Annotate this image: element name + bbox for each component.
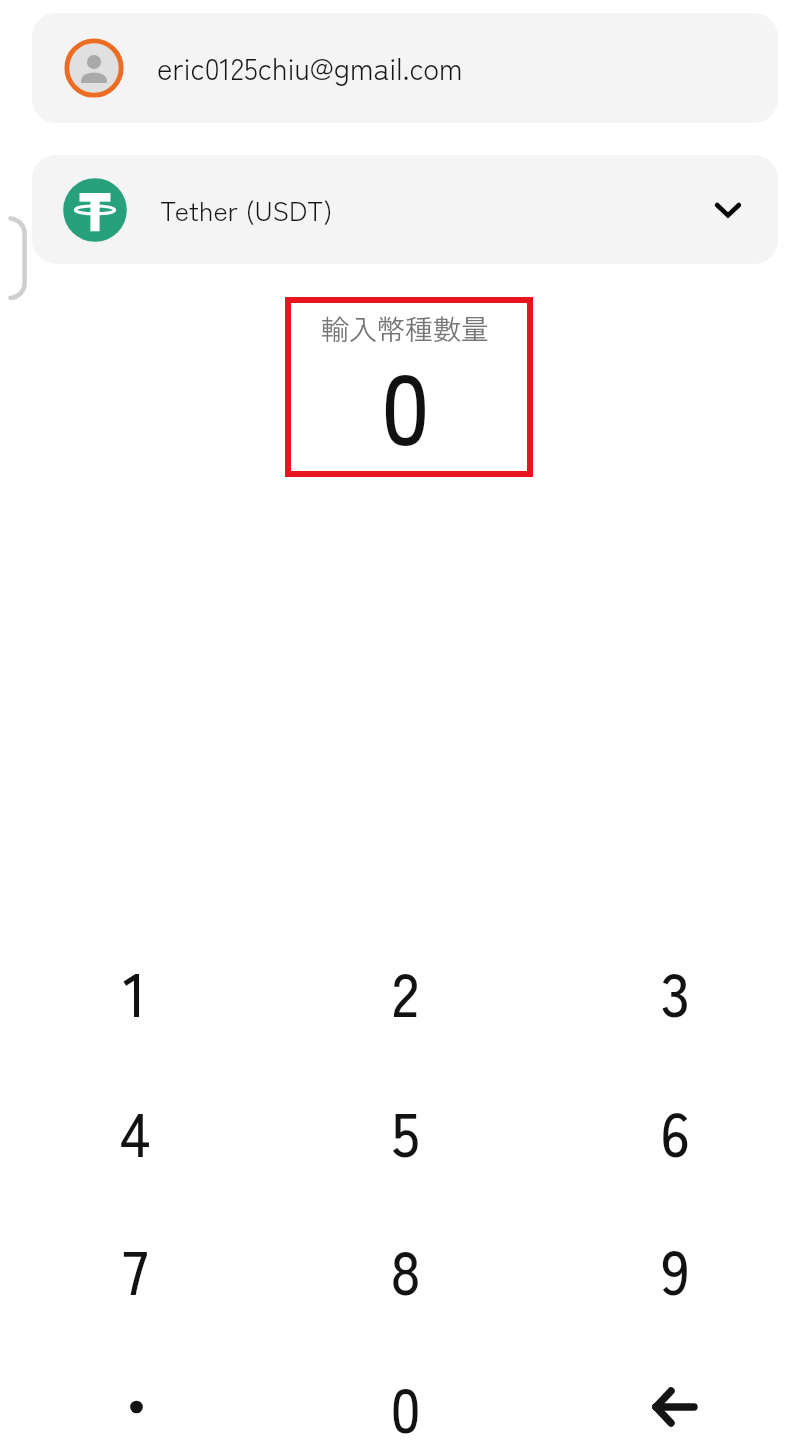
button[interactable]: 1 xyxy=(0,921,270,1060)
button[interactable]: 7 xyxy=(0,1199,270,1338)
button[interactable]: Decimal point xyxy=(0,1337,270,1440)
other: Backspace xyxy=(647,1379,703,1435)
button[interactable]: 5 xyxy=(270,1061,540,1200)
other: Decimal point xyxy=(125,1397,145,1417)
staticText: 8 xyxy=(390,1225,421,1312)
staticText: Tether (USDT) xyxy=(160,189,333,228)
button[interactable]: eric0125chiu@gmail.com xyxy=(32,13,778,123)
staticText: 3 xyxy=(661,947,690,1034)
button[interactable]: 8 xyxy=(270,1199,540,1338)
button[interactable]: 2 xyxy=(270,921,540,1060)
staticText: 9 xyxy=(661,1225,690,1312)
other: Select coin xyxy=(707,189,749,231)
staticText: 0 xyxy=(381,332,430,472)
button[interactable]: 0 xyxy=(270,1337,540,1440)
staticText: eric0125chiu@gmail.com xyxy=(157,46,463,89)
staticText: 2 xyxy=(392,947,419,1034)
button[interactable]: 6 xyxy=(540,1061,810,1200)
button[interactable]: 9 xyxy=(540,1199,810,1338)
button[interactable]: 3 xyxy=(540,921,810,1060)
staticText: 0 xyxy=(390,1363,421,1440)
button[interactable]: 4 xyxy=(0,1061,270,1200)
staticText: 4 xyxy=(120,1087,150,1174)
staticText: 1 xyxy=(123,947,147,1034)
staticText: 5 xyxy=(391,1087,420,1174)
staticText: 6 xyxy=(660,1087,690,1174)
button[interactable]: Tether (USDT) xyxy=(32,155,778,264)
staticText: 輸入幣種數量 xyxy=(321,308,490,349)
staticText: 7 xyxy=(123,1225,148,1312)
button[interactable]: Backspace xyxy=(540,1337,810,1440)
